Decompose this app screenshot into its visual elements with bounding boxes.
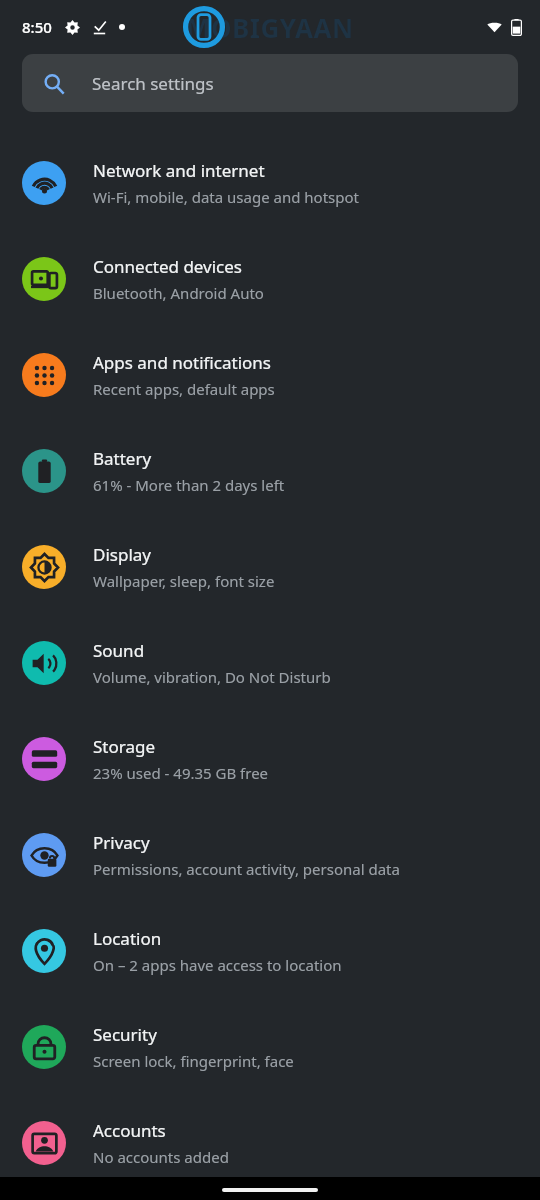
staticText: Sound bbox=[93, 639, 145, 662]
staticText: Apps and notifications bbox=[93, 351, 271, 374]
staticText: No accounts added bbox=[93, 1147, 229, 1167]
button[interactable]: Storage bbox=[0, 711, 540, 807]
button[interactable]: Location bbox=[0, 903, 540, 999]
staticText: Volume, vibration, Do Not Disturb bbox=[93, 667, 331, 687]
staticText: Network and internet bbox=[93, 159, 265, 182]
staticText: Battery bbox=[93, 447, 152, 470]
staticText: Permissions, account activity, personal … bbox=[93, 859, 400, 879]
staticText: Security bbox=[93, 1023, 157, 1046]
staticText: Screen lock, fingerprint, face bbox=[93, 1051, 294, 1071]
staticText: Search settings bbox=[92, 72, 214, 95]
staticText: Storage bbox=[93, 735, 156, 758]
button[interactable]: Network and internet bbox=[0, 135, 540, 231]
button[interactable]: Search settings bbox=[22, 54, 518, 112]
staticText: 61% - More than 2 days left bbox=[93, 475, 285, 495]
staticText: On – 2 apps have access to location bbox=[93, 955, 342, 975]
button[interactable]: Display bbox=[0, 519, 540, 615]
staticText: 8:50 bbox=[22, 17, 52, 37]
staticText: Wallpaper, sleep, font size bbox=[93, 571, 275, 591]
button[interactable]: Connected devices bbox=[0, 231, 540, 327]
button[interactable]: Accounts bbox=[0, 1095, 540, 1191]
button[interactable]: Apps and notifications bbox=[0, 327, 540, 423]
staticText: Bluetooth, Android Auto bbox=[93, 283, 264, 303]
staticText: MOBIGYAAN bbox=[186, 10, 354, 45]
staticText: Display bbox=[93, 543, 151, 566]
staticText: Wi-Fi, mobile, data usage and hotspot bbox=[93, 187, 359, 207]
button[interactable]: Security bbox=[0, 999, 540, 1095]
button[interactable]: Sound bbox=[0, 615, 540, 711]
staticText: Privacy bbox=[93, 831, 150, 854]
button[interactable]: Battery bbox=[0, 423, 540, 519]
staticText: Connected devices bbox=[93, 255, 243, 278]
staticText: Location bbox=[93, 927, 162, 950]
button[interactable]: Privacy bbox=[0, 807, 540, 903]
staticText: Accounts bbox=[93, 1119, 166, 1142]
staticText: Recent apps, default apps bbox=[93, 379, 275, 399]
staticText: 23% used - 49.35 GB free bbox=[93, 763, 269, 783]
